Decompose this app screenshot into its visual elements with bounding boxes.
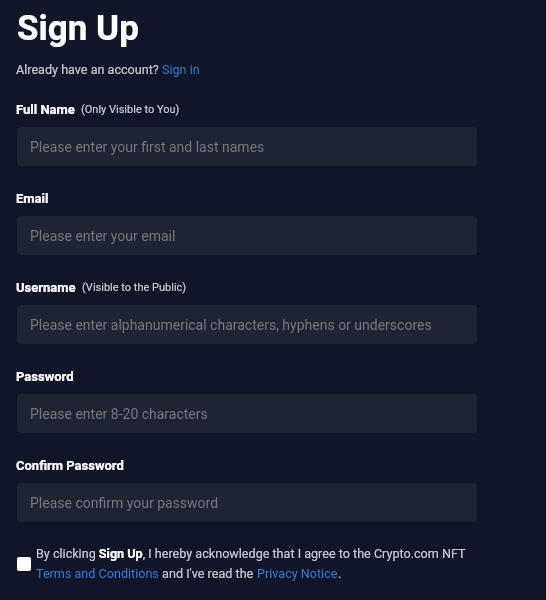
staticText: and I've read the bbox=[159, 566, 257, 581]
staticText: Please confirm your password bbox=[30, 495, 219, 511]
button[interactable]: Please confirm your password bbox=[17, 483, 477, 522]
staticText: Please enter alphanumerical characters, … bbox=[30, 317, 432, 333]
button[interactable]: Privacy Notice bbox=[257, 566, 338, 581]
staticText: Password bbox=[16, 369, 74, 384]
staticText: By clicking Sign Up, I hereby acknowledg… bbox=[36, 546, 466, 561]
button[interactable]: Accept terms and conditions bbox=[17, 557, 31, 571]
staticText: Terms and Conditions bbox=[36, 566, 159, 581]
staticText: Please enter 8-20 characters bbox=[30, 406, 208, 422]
staticText: Confirm Password bbox=[16, 458, 124, 473]
staticText: Sign Up bbox=[17, 8, 139, 49]
staticText: (Visible to the Public) bbox=[82, 281, 187, 294]
button[interactable]: Please enter 8-20 characters bbox=[17, 394, 477, 433]
staticText: Full Name bbox=[16, 102, 75, 117]
staticText: Sign in bbox=[162, 62, 200, 77]
staticText: (Only Visible to You) bbox=[81, 103, 180, 116]
staticText: Already have an account? bbox=[16, 62, 162, 77]
button[interactable]: Please enter alphanumerical characters, … bbox=[17, 305, 477, 344]
button[interactable]: Sign in bbox=[162, 62, 200, 77]
staticText: Privacy Notice bbox=[257, 566, 338, 581]
staticText: Please enter your email bbox=[30, 228, 176, 244]
staticText: Please enter your first and last names bbox=[30, 139, 265, 155]
staticText: Username bbox=[16, 280, 76, 295]
button[interactable]: Please enter your first and last names bbox=[17, 127, 477, 166]
staticText: . bbox=[338, 566, 342, 581]
button[interactable]: Please enter your email bbox=[17, 216, 477, 255]
staticText: Email bbox=[16, 191, 49, 206]
button[interactable]: Terms and Conditions bbox=[36, 566, 159, 581]
